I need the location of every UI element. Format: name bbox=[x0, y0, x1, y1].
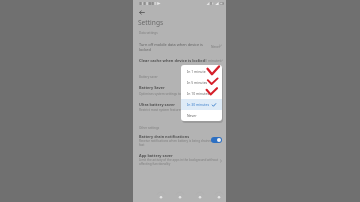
staticText: Restrict most system features bbox=[139, 108, 183, 112]
button[interactable] bbox=[133, 100, 226, 112]
staticText: Turn off mobile data when device is lock… bbox=[139, 42, 203, 52]
button[interactable]: In 5 minutes bbox=[181, 77, 222, 88]
staticText: In 10 minutes bbox=[187, 91, 210, 96]
staticText: Other settings bbox=[139, 126, 160, 130]
button[interactable] bbox=[133, 133, 226, 149]
staticText: In 5 minutes bbox=[187, 80, 208, 85]
staticText: Limit the activity of the apps in the ba… bbox=[139, 158, 219, 166]
staticText: Never bbox=[211, 44, 221, 48]
button[interactable] bbox=[133, 56, 226, 65]
button[interactable] bbox=[133, 40, 226, 54]
staticText: Battery saver bbox=[139, 75, 158, 79]
button[interactable]: Back bbox=[194, 189, 206, 201]
button[interactable]: Never bbox=[181, 110, 222, 121]
staticText: Receive notifications when battery is be… bbox=[139, 139, 212, 147]
button[interactable]: Add bbox=[213, 189, 225, 201]
staticText: Battery Saver bbox=[139, 85, 165, 90]
button[interactable]: Apps bbox=[174, 189, 186, 201]
button[interactable]: In 1 minute bbox=[181, 66, 222, 77]
staticText: In 1 minute bbox=[187, 69, 206, 74]
staticText: Never bbox=[187, 113, 197, 118]
button[interactable] bbox=[133, 151, 226, 168]
staticText: Data settings bbox=[139, 31, 158, 35]
button[interactable]: In 30 minutes bbox=[181, 99, 222, 110]
staticText: Battery drain notifications bbox=[139, 134, 190, 139]
staticText: Ultra battery saver bbox=[139, 102, 175, 107]
button[interactable] bbox=[133, 85, 226, 97]
staticText: Clear cache when device is locked bbox=[139, 58, 206, 63]
staticText: Settings bbox=[138, 18, 164, 27]
button[interactable]: Back bbox=[136, 8, 145, 17]
button[interactable]: Open app battery saver bbox=[219, 159, 223, 163]
button[interactable]: In 10 minutes bbox=[181, 88, 222, 99]
staticText: App battery saver bbox=[139, 153, 173, 158]
staticText: In 30 minutes bbox=[187, 102, 210, 107]
staticText: In 30 minutes bbox=[199, 58, 221, 63]
staticText: Optimises system settings to save batter… bbox=[139, 92, 200, 96]
button[interactable]: Battery drain notifications toggle bbox=[211, 137, 222, 143]
button[interactable]: Home bbox=[155, 189, 167, 201]
